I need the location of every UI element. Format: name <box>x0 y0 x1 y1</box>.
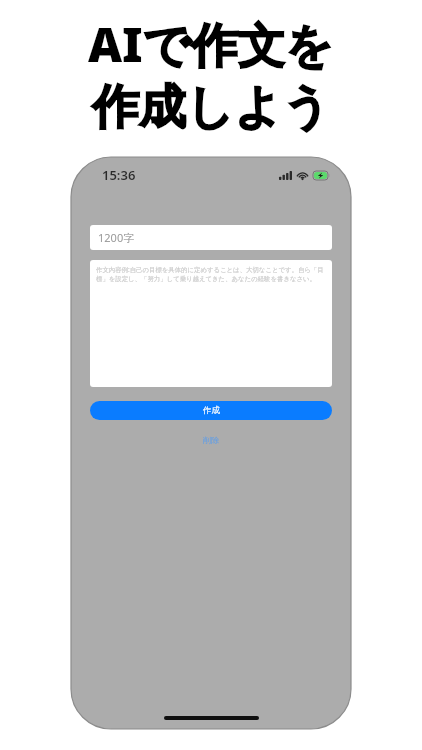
staticText: 作成しよう <box>92 78 331 137</box>
staticText: 作成 <box>203 405 220 416</box>
other: Battery charging <box>313 171 330 180</box>
staticText: 1200字 <box>98 230 135 245</box>
button[interactable]: 作成 <box>90 401 332 420</box>
staticText: 削除 <box>203 435 219 445</box>
button[interactable]: 削除 <box>90 432 332 448</box>
staticText: 15:36 <box>102 166 136 184</box>
button[interactable]: 1200字 <box>90 225 332 250</box>
staticText: AIで作文を <box>88 12 334 76</box>
staticText: 作文内容例:自己の目標を具体的に定めすることは、大切なことです。自ら「目標」を設… <box>96 265 328 283</box>
button[interactable]: 作文内容例:自己の目標を具体的に定めすることは、大切なことです。自ら「目標」を設… <box>90 260 332 387</box>
